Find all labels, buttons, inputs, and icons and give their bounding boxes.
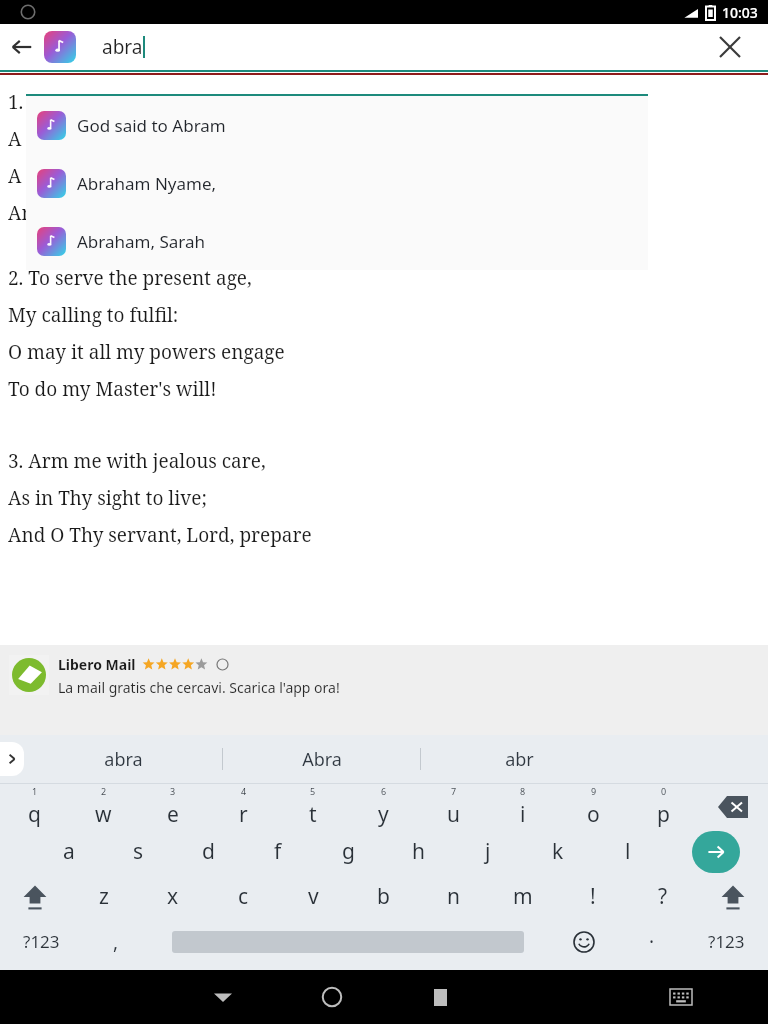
button[interactable]: Expand suggestions xyxy=(0,742,24,776)
staticText: l xyxy=(625,837,631,866)
button[interactable]: , xyxy=(83,919,148,964)
button[interactable]: 0 xyxy=(628,784,698,829)
button[interactable]: Recents xyxy=(386,970,495,1024)
staticText: k xyxy=(552,837,564,866)
button[interactable]: Emoji xyxy=(548,919,619,964)
button[interactable]: n xyxy=(418,874,488,919)
button[interactable]: d xyxy=(173,829,243,874)
staticText: o xyxy=(587,800,600,829)
staticText: d xyxy=(202,837,215,866)
staticText: ? xyxy=(658,882,668,911)
staticText: ?123 xyxy=(23,930,60,953)
staticText: La mail gratis che cercavi. Scarica l'ap… xyxy=(58,678,340,697)
staticText: n xyxy=(447,882,460,911)
staticText: Abraham Nyame, xyxy=(77,172,217,195)
button[interactable]: ?123 xyxy=(0,919,83,964)
button[interactable]: 8 xyxy=(488,784,558,829)
staticText: And O Thy servant, Lord, prepare xyxy=(8,522,312,548)
button[interactable]: Shift xyxy=(0,874,69,919)
staticText: 9 xyxy=(591,785,597,797)
staticText: · xyxy=(649,929,655,955)
button[interactable]: 4 xyxy=(208,784,278,829)
button[interactable]: k xyxy=(523,829,593,874)
staticText: ?123 xyxy=(708,930,745,953)
staticText: abr xyxy=(505,747,534,772)
button[interactable]: b xyxy=(348,874,418,919)
button[interactable]: Abraham Nyame, xyxy=(26,154,648,212)
staticText: abra xyxy=(102,34,143,60)
button[interactable]: Keyboard xyxy=(626,970,735,1024)
button[interactable]: x xyxy=(138,874,208,919)
staticText: y xyxy=(378,800,389,829)
staticText: 2 xyxy=(101,785,107,797)
staticText: A God to glorify, xyxy=(8,126,153,152)
button[interactable]: ?123 xyxy=(684,919,768,964)
staticText: 2. To serve the present age, xyxy=(8,265,252,291)
button[interactable]: · xyxy=(619,919,684,964)
staticText: And fit it for the sky. xyxy=(8,200,192,226)
button[interactable]: f xyxy=(243,829,313,874)
button[interactable]: 9 xyxy=(558,784,628,829)
button[interactable]: ! xyxy=(558,874,628,919)
button[interactable]: 3 xyxy=(138,784,208,829)
staticText: A soul to save. xyxy=(8,163,137,189)
staticText: 3 xyxy=(170,785,176,797)
button[interactable]: Abra xyxy=(223,735,420,783)
button[interactable]: h xyxy=(383,829,453,874)
staticText: u xyxy=(447,800,460,829)
button[interactable]: Libero Mail xyxy=(0,645,768,735)
staticText: c xyxy=(238,882,249,911)
staticText: 6 xyxy=(381,785,387,797)
staticText: God said to Abram xyxy=(77,114,226,137)
button[interactable]: 7 xyxy=(418,784,488,829)
button[interactable]: 6 xyxy=(348,784,418,829)
button[interactable]: Abraham, Sarah xyxy=(26,212,648,270)
staticText: As in Thy sight to live; xyxy=(8,485,207,511)
staticText: Abraham, Sarah xyxy=(77,230,206,253)
button[interactable]: s xyxy=(103,829,173,874)
button[interactable]: 2 xyxy=(69,784,138,829)
staticText: My calling to fulfil: xyxy=(8,302,179,328)
button[interactable]: ? xyxy=(628,874,698,919)
button[interactable]: m xyxy=(488,874,558,919)
button[interactable]: 1 xyxy=(0,784,69,829)
button[interactable]: z xyxy=(69,874,138,919)
staticText: a xyxy=(63,837,75,866)
staticText: h xyxy=(412,837,425,866)
button[interactable]: Home xyxy=(277,970,386,1024)
button[interactable]: abra xyxy=(24,735,222,783)
button[interactable]: a xyxy=(34,829,103,874)
staticText: O may it all my powers engage xyxy=(8,339,285,365)
staticText: To do my Master's will! xyxy=(8,376,217,402)
staticText: j xyxy=(485,837,491,866)
button[interactable]: l xyxy=(593,829,663,874)
staticText: w xyxy=(95,800,112,829)
staticText: z xyxy=(99,882,109,911)
staticText: 1 xyxy=(32,785,38,797)
staticText: abra xyxy=(104,747,143,772)
button[interactable]: 5 xyxy=(278,784,348,829)
staticText: 5 xyxy=(310,785,316,797)
staticText: ! xyxy=(590,882,596,911)
staticText: p xyxy=(657,800,670,829)
button[interactable]: Shift xyxy=(698,874,768,919)
staticText: 7 xyxy=(451,785,457,797)
button[interactable]: God said to Abram xyxy=(26,96,648,154)
button[interactable]: Search xyxy=(692,831,740,873)
button[interactable]: abr xyxy=(421,735,618,783)
staticText: f xyxy=(274,837,282,866)
button[interactable]: Clear xyxy=(706,24,754,70)
button[interactable]: Back xyxy=(168,970,277,1024)
staticText: 8 xyxy=(520,785,526,797)
button[interactable]: v xyxy=(278,874,348,919)
staticText: x xyxy=(167,882,179,911)
staticText: 1. A charge to keep I have, xyxy=(8,89,244,115)
button[interactable]: j xyxy=(453,829,523,874)
staticText: s xyxy=(133,837,144,866)
button[interactable]: Back xyxy=(0,25,44,69)
button[interactable]: g xyxy=(313,829,383,874)
button[interactable]: Backspace xyxy=(698,784,768,829)
staticText: b xyxy=(377,882,390,911)
button[interactable]: c xyxy=(208,874,278,919)
